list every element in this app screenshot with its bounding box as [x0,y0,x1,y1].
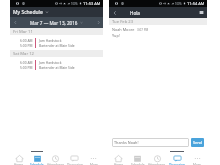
staticText: 6:00 AM [20,60,33,64]
staticText: More [193,163,201,165]
button[interactable]: Send [191,138,204,147]
button[interactable]: Mar 7 — Mar 13, 2016 [20,17,93,28]
staticText: 11:54 AM [187,1,205,6]
staticText: Thanks Noah! [114,140,139,145]
staticText: Hola [130,10,140,16]
button[interactable]: Back [109,7,120,18]
staticText: Tue Feb 23 [112,19,134,25]
staticText: 5:00 PM [20,43,33,47]
staticText: 11:53 AM [83,1,101,6]
staticText: 100% [71,2,78,6]
button[interactable]: Home [109,149,128,165]
button[interactable]: More [84,149,103,165]
staticText: Bartender at Main Side [39,65,75,69]
staticText: 100% [175,2,182,6]
staticText: Schedule [131,163,145,165]
staticText: Jam Hardstock [39,38,62,42]
button[interactable]: Attendance [46,149,65,165]
button[interactable]: Home [10,149,28,165]
staticText: Sat Mar 12 [13,51,35,57]
staticText: Home [114,163,124,165]
staticText: Jam Hardstock [39,60,62,64]
staticText: Mar 7 — Mar 13, 2016 [30,20,78,26]
staticText: 3:07 PM [137,28,149,32]
staticText: 6:00 AM [20,38,33,42]
button[interactable]: My Schedule [10,7,103,17]
button[interactable]: Discussion [167,149,187,165]
staticText: Attendance [148,163,166,165]
staticText: Discussion [67,163,83,165]
button[interactable]: Schedule [128,149,147,165]
staticText: Attendance [47,163,65,165]
staticText: Home [14,163,24,165]
staticText: Send [193,140,202,145]
button[interactable]: Discussion [65,149,84,165]
button[interactable]: Schedule [28,149,46,165]
button[interactable]: Attendance [147,149,167,165]
staticText: Discussion [169,163,185,165]
button[interactable]: Group details [196,7,207,18]
button[interactable]: Previous week [10,17,20,28]
button[interactable]: Next week [93,17,103,28]
staticText: 5:00 PM [20,65,33,69]
button[interactable]: More [187,149,207,165]
staticText: Noah Moore [112,27,135,32]
staticText: Schedule [30,163,44,165]
staticText: My Schedule [13,9,43,16]
staticText: Yup! [112,33,120,38]
button[interactable]: 6:00 AM [10,57,103,72]
button[interactable]: 6:00 AM [10,35,103,50]
staticText: Fri Mar 11 [13,29,33,35]
button[interactable]: Thanks Noah! [112,138,189,147]
staticText: Bartender at Main Side [39,43,75,47]
staticText: More [90,163,98,165]
